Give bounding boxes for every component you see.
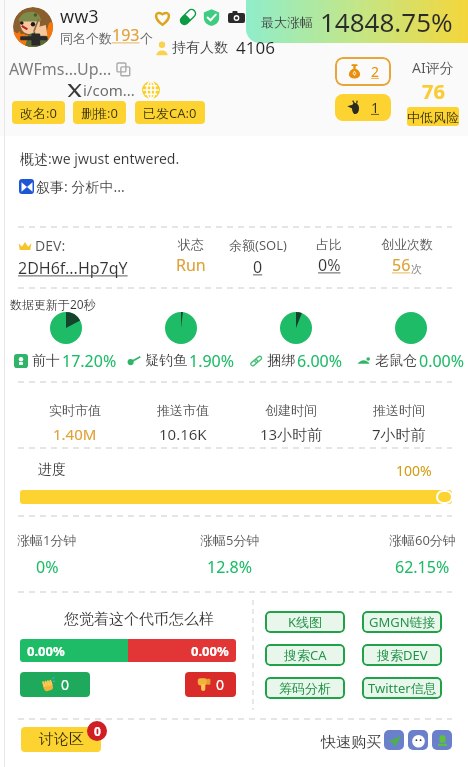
staticText: i/com... bbox=[83, 80, 135, 100]
staticText: 涨幅60分钟 bbox=[389, 531, 456, 549]
other: Favorite bbox=[153, 8, 172, 27]
staticText: 搜索CA bbox=[284, 646, 327, 664]
button[interactable]: K线图 bbox=[265, 611, 345, 633]
staticText: 进度 bbox=[38, 461, 66, 479]
button[interactable]: Twitter信息 bbox=[362, 677, 442, 699]
staticText: 搜索DEV bbox=[377, 646, 428, 664]
button[interactable]: GMGN链接 bbox=[362, 611, 442, 633]
button[interactable]: 1 bbox=[335, 94, 391, 121]
staticText: 讨论区 bbox=[39, 730, 84, 749]
staticText: 1.90% bbox=[189, 350, 235, 372]
button[interactable]: 删推:0 bbox=[73, 101, 126, 124]
staticText: 实时市值 bbox=[49, 402, 101, 418]
staticText: GMGN链接 bbox=[369, 613, 436, 631]
staticText: 占比 bbox=[316, 236, 342, 252]
staticText: K线图 bbox=[288, 613, 323, 631]
other: Pill bbox=[178, 7, 198, 27]
other: Website bbox=[142, 81, 160, 99]
staticText: 10.16K bbox=[159, 424, 207, 444]
staticText: 12.8% bbox=[207, 556, 253, 578]
staticText: 创建时间 bbox=[265, 402, 317, 418]
staticText: 您觉着这个代币怎么样 bbox=[64, 610, 214, 629]
staticText: 76 bbox=[422, 78, 445, 105]
staticText: 前十 bbox=[32, 352, 60, 370]
staticText: 0.00% bbox=[419, 350, 465, 372]
staticText: 已发CA:0 bbox=[143, 104, 197, 122]
staticText: 状态 bbox=[178, 236, 204, 252]
staticText: DEV: bbox=[35, 236, 66, 255]
other: Verified bbox=[203, 9, 220, 26]
staticText: 7小时前 bbox=[372, 424, 426, 444]
staticText: 6.00% bbox=[297, 350, 343, 372]
staticText: 老鼠仓 bbox=[375, 352, 417, 370]
staticText: 1 bbox=[371, 98, 380, 117]
staticText: 改名:0 bbox=[20, 104, 57, 122]
staticText: 推送时间 bbox=[373, 402, 425, 418]
staticText: 快速购买 bbox=[321, 733, 381, 752]
other: Screenshot bbox=[228, 9, 245, 26]
staticText: 2DH6f...Hp7qY bbox=[18, 257, 128, 279]
staticText: ww3 bbox=[60, 4, 99, 29]
staticText: 捆绑 bbox=[267, 352, 295, 370]
button[interactable]: 0 bbox=[20, 672, 90, 697]
staticText: 0 bbox=[61, 675, 70, 694]
button[interactable]: 讨论区 bbox=[21, 727, 101, 752]
staticText: 最大涨幅 bbox=[261, 14, 313, 30]
staticText: 0% bbox=[318, 254, 341, 276]
staticText: 涨幅1分钟 bbox=[17, 531, 77, 549]
staticText: 0.00% bbox=[27, 642, 65, 660]
button[interactable]: Quick buy 1 bbox=[408, 730, 428, 750]
staticText: 0 bbox=[253, 256, 263, 278]
staticText: 数据更新于20秒 bbox=[10, 296, 96, 312]
staticText: 0.00% bbox=[191, 642, 229, 660]
staticText: 疑钓鱼 bbox=[145, 352, 187, 370]
staticText: 个 bbox=[140, 30, 153, 46]
button[interactable]: Quick buy 0 bbox=[384, 730, 404, 750]
staticText: 0% bbox=[36, 556, 59, 578]
staticText: 1.40M bbox=[53, 424, 97, 444]
button[interactable]: 0 bbox=[185, 672, 236, 697]
staticText: 2 bbox=[371, 62, 380, 81]
staticText: Twitter信息 bbox=[368, 679, 437, 697]
button[interactable]: 筹码分析 bbox=[265, 677, 345, 699]
staticText: AI评分 bbox=[412, 58, 454, 77]
staticText: 余额(SOL) bbox=[229, 236, 287, 254]
button[interactable]: 搜索CA bbox=[265, 644, 345, 666]
staticText: 同名个数 bbox=[60, 30, 112, 46]
other: Copy address bbox=[117, 63, 130, 76]
button[interactable]: 改名:0 bbox=[12, 101, 65, 124]
button[interactable]: 2 bbox=[335, 57, 391, 86]
staticText: 删推:0 bbox=[81, 104, 118, 122]
staticText: 4106 bbox=[236, 36, 275, 59]
staticText: 中低风险 bbox=[407, 109, 459, 125]
staticText: 筹码分析 bbox=[279, 680, 331, 696]
staticText: 0 bbox=[216, 675, 225, 694]
staticText: 100% bbox=[396, 461, 432, 480]
other: X profile bbox=[67, 83, 82, 98]
staticText: 概述:we jwust entwered. bbox=[20, 149, 180, 168]
staticText: 推送市值 bbox=[157, 402, 209, 418]
button[interactable]: Quick buy 2 bbox=[432, 730, 452, 750]
button[interactable]: 已发CA:0 bbox=[135, 101, 205, 124]
staticText: 13小时前 bbox=[260, 424, 323, 444]
staticText: 持有人数 bbox=[172, 39, 228, 57]
button[interactable]: 搜索DEV bbox=[362, 644, 442, 666]
staticText: Run bbox=[176, 254, 206, 276]
staticText: 17.20% bbox=[62, 350, 117, 372]
staticText: 创业次数 bbox=[381, 236, 433, 252]
staticText: 14848.75% bbox=[320, 4, 453, 39]
staticText: 56 bbox=[392, 254, 411, 276]
staticText: 次 bbox=[411, 262, 422, 276]
staticText: 193 bbox=[112, 24, 140, 46]
button[interactable]: Token avatar bbox=[13, 7, 53, 47]
staticText: 叙事: 分析中... bbox=[36, 177, 125, 196]
staticText: AWFms...Up... bbox=[9, 58, 112, 80]
staticText: 62.15% bbox=[395, 556, 450, 578]
staticText: 涨幅5分钟 bbox=[200, 531, 260, 549]
staticText: 0 bbox=[94, 723, 101, 739]
